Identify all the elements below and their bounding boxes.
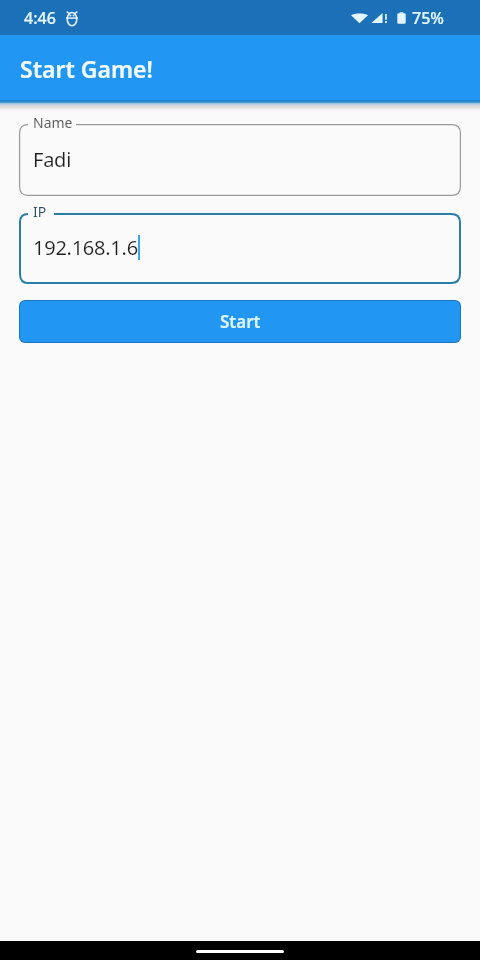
button[interactable]: Name field — [19, 124, 461, 196]
staticText: Fadi — [33, 146, 72, 173]
other: Mobile signal — [371, 11, 388, 26]
other: Home gesture handle — [196, 950, 284, 953]
staticText: IP — [33, 202, 47, 221]
other: Wi-Fi — [351, 11, 368, 26]
staticText: 192.168.1.6 — [33, 234, 138, 261]
staticText: Name — [33, 113, 73, 132]
other: Battery — [396, 10, 407, 26]
button[interactable]: Start — [19, 300, 461, 343]
staticText: 75% — [412, 7, 444, 29]
staticText: Start — [220, 310, 261, 333]
staticText: 4:46 — [24, 7, 56, 29]
button[interactable]: IP field — [19, 213, 461, 284]
staticText: Start Game! — [20, 53, 153, 84]
other: Debug mode — [66, 11, 78, 26]
